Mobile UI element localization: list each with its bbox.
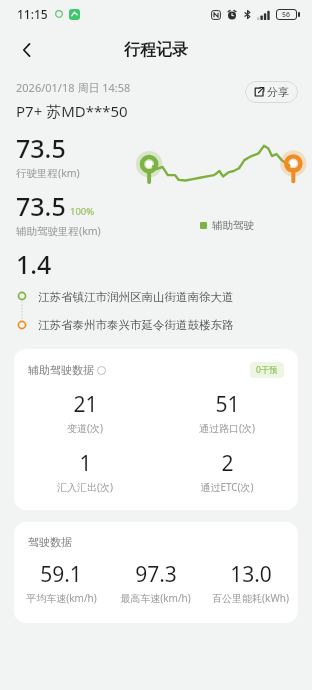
staticText: 73.5 [16, 189, 66, 223]
staticText: 江苏省镇江市润州区南山街道南徐大道 [38, 290, 234, 304]
staticText: P7+ 苏MD***50 [16, 101, 128, 121]
staticText: 0干预 [256, 364, 278, 376]
staticText: 行程记录 [124, 40, 188, 60]
staticText: 56 [282, 10, 291, 20]
staticText: 通过ETC(次) [200, 480, 254, 494]
staticText: 2 [221, 449, 234, 478]
staticText: 13.0 [230, 560, 272, 589]
staticText: 59.1 [40, 560, 82, 589]
staticText: 驾驶数据 [28, 535, 72, 549]
staticText: 江苏省泰州市泰兴市延令街道鼓楼东路 [38, 318, 234, 332]
staticText: 1.4 [16, 247, 52, 281]
staticText: 1 [79, 449, 92, 478]
staticText: 100% [70, 205, 95, 218]
staticText: 辅助驾驶 [212, 219, 254, 232]
staticText: 汇入汇出(次) [57, 480, 113, 494]
button[interactable]: 驾驶数据 [14, 522, 298, 623]
staticText: 73.5 [16, 131, 66, 165]
staticText: 11:15 [17, 6, 48, 22]
staticText: 辅助驾驶数据 [28, 363, 94, 377]
staticText: 百公里能耗(kWh) [212, 591, 289, 605]
staticText: 2026/01/18 周日 14:58 [16, 80, 131, 95]
button[interactable]: 返回 [8, 31, 46, 69]
staticText: 最高车速(km/h) [120, 591, 191, 605]
staticText: 97.3 [135, 560, 177, 589]
staticText: 通过路口(次) [199, 421, 255, 435]
staticText: 行驶里程(km) [16, 166, 80, 180]
staticText: 分享 [267, 85, 289, 99]
staticText: 变道(次) [67, 421, 103, 435]
staticText: 21 [73, 390, 98, 419]
button[interactable]: 辅助驾驶数据 [14, 349, 298, 510]
staticText: 51 [215, 390, 240, 419]
staticText: 辅助驾驶里程(km) [16, 224, 101, 238]
staticText: 平均车速(km/h) [26, 591, 97, 605]
button[interactable]: 分享 [245, 81, 298, 103]
